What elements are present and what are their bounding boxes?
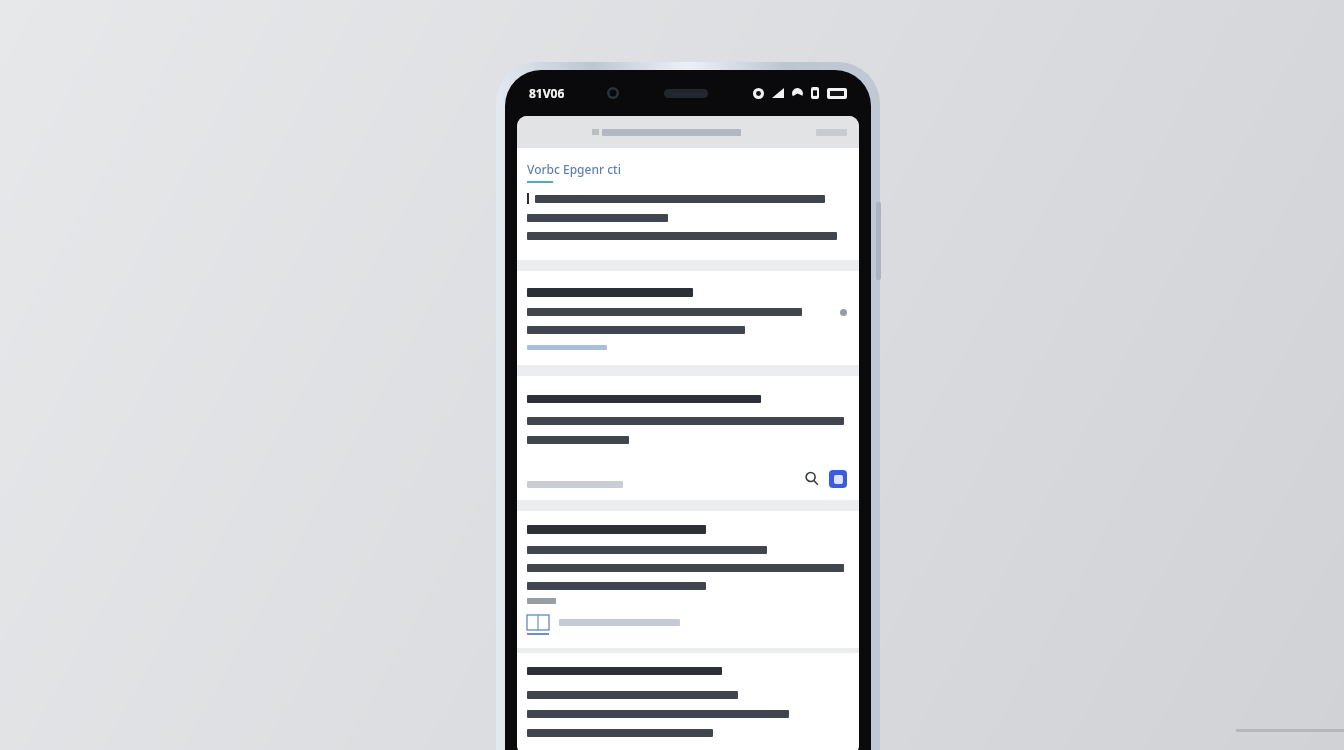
button[interactable] <box>517 116 859 148</box>
button[interactable]: Open item <box>829 470 847 488</box>
button[interactable]: Search <box>801 468 821 488</box>
staticText: Vorbc Epgenr cti <box>527 161 621 177</box>
staticText: 81V06 <box>529 85 565 101</box>
button[interactable] <box>527 615 680 635</box>
